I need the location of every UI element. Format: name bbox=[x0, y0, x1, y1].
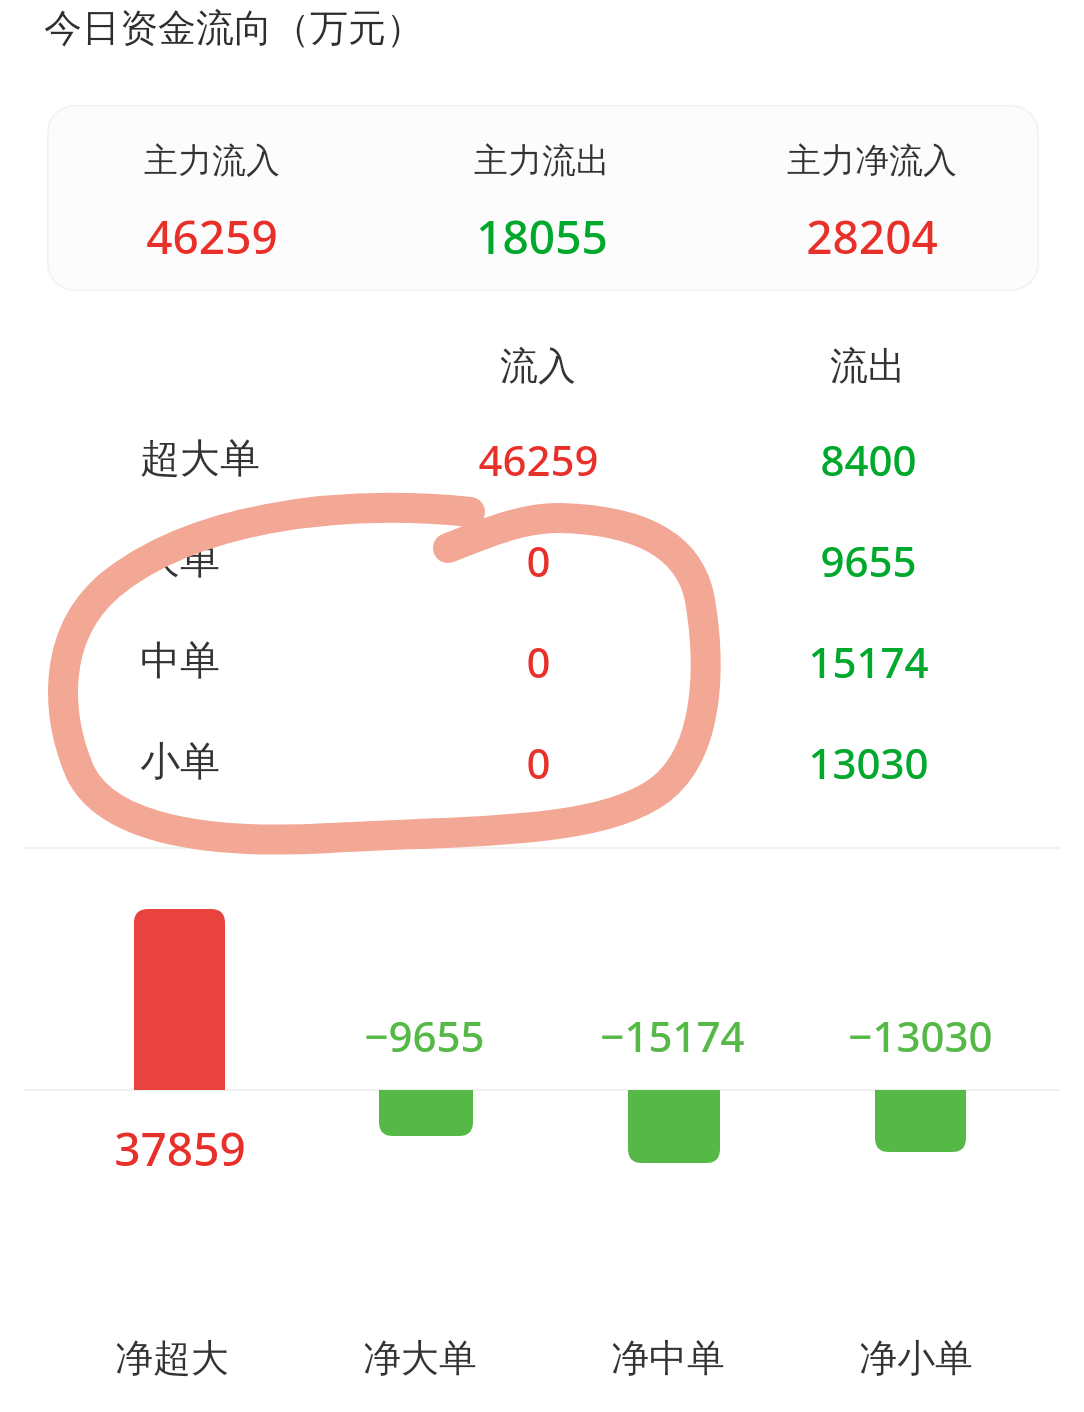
staticText: 9655 bbox=[820, 532, 917, 589]
button[interactable] bbox=[24, 714, 1060, 810]
staticText: 主力净流入 bbox=[787, 139, 957, 182]
button[interactable]: 今日资金流向（万元） bbox=[44, 4, 424, 52]
button[interactable] bbox=[24, 613, 1060, 709]
staticText: 大单 bbox=[140, 534, 220, 584]
staticText: 净中单 bbox=[611, 1334, 725, 1382]
button[interactable] bbox=[42, 1315, 302, 1405]
staticText: 46259 bbox=[478, 431, 599, 488]
staticText: −13030 bbox=[848, 1007, 993, 1064]
button[interactable] bbox=[538, 1315, 798, 1405]
staticText: 28204 bbox=[806, 205, 938, 268]
staticText: 13030 bbox=[808, 734, 929, 791]
staticText: −9655 bbox=[364, 1007, 485, 1064]
staticText: 18055 bbox=[476, 205, 608, 268]
staticText: 0 bbox=[526, 532, 551, 589]
staticText: 净超大 bbox=[115, 1334, 229, 1382]
staticText: 小单 bbox=[140, 736, 220, 786]
button[interactable] bbox=[24, 411, 1060, 507]
staticText: −15174 bbox=[600, 1007, 745, 1064]
staticText: 净大单 bbox=[363, 1334, 477, 1382]
button[interactable] bbox=[48, 106, 1038, 290]
button[interactable] bbox=[786, 1315, 1046, 1405]
staticText: 0 bbox=[526, 633, 551, 690]
staticText: 主力流出 bbox=[474, 139, 610, 182]
staticText: 中单 bbox=[140, 635, 220, 685]
staticText: 46259 bbox=[146, 205, 278, 268]
staticText: 流出 bbox=[830, 342, 906, 390]
staticText: 今日资金流向（万元） bbox=[44, 4, 424, 52]
staticText: 8400 bbox=[820, 431, 917, 488]
staticText: 流入 bbox=[500, 342, 576, 390]
staticText: 37859 bbox=[114, 1117, 246, 1180]
staticText: 主力流入 bbox=[144, 139, 280, 182]
staticText: 0 bbox=[526, 734, 551, 791]
button[interactable] bbox=[290, 1315, 550, 1405]
staticText: 15174 bbox=[808, 633, 929, 690]
button[interactable] bbox=[24, 512, 1060, 608]
staticText: 超大单 bbox=[140, 433, 260, 483]
staticText: 净小单 bbox=[859, 1334, 973, 1382]
